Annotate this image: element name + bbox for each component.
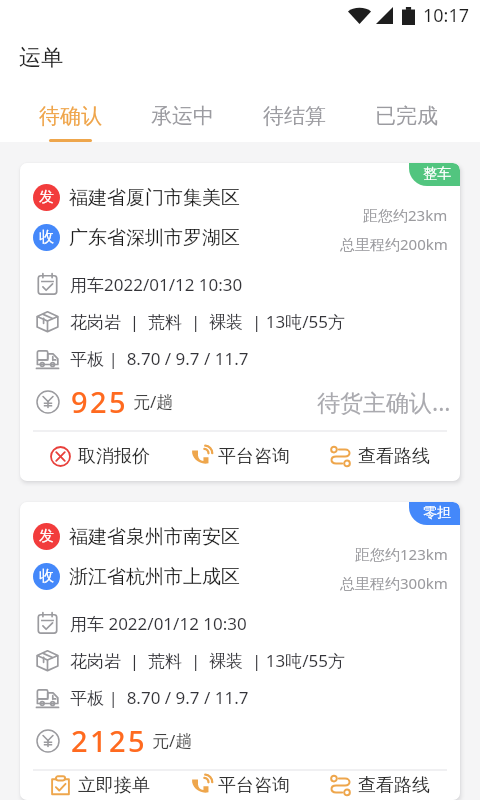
button[interactable]: 发 <box>20 163 460 481</box>
staticText: 零担 <box>423 504 451 522</box>
button[interactable]: 待结算 <box>238 83 350 142</box>
staticText: 10:17 <box>423 3 470 28</box>
button[interactable]: 待确认 <box>14 83 126 142</box>
staticText: 用车 2022/01/12 10:30 <box>70 612 247 635</box>
staticText: 总里程约300km <box>340 573 448 593</box>
staticText: 元/趟 <box>133 390 174 413</box>
staticText: 承运中 <box>151 103 214 129</box>
button[interactable]: 立即接单 <box>30 771 170 800</box>
staticText: 广东省深圳市罗湖区 <box>69 226 240 250</box>
button[interactable]: 查看路线 <box>310 432 450 481</box>
staticText: 已完成 <box>375 103 438 129</box>
staticText: 立即接单 <box>78 774 150 797</box>
staticText: 平板 | 8.70 / 9.7 / 11.7 <box>70 347 249 370</box>
button[interactable]: 平台咨询 <box>170 771 310 800</box>
staticText: 待结算 <box>263 103 326 129</box>
button[interactable]: 平台咨询 <box>170 432 310 481</box>
button[interactable]: 取消报价 <box>30 432 170 481</box>
staticText: 总里程约200km <box>340 234 448 254</box>
staticText: 整车 <box>423 165 451 183</box>
staticText: 收 <box>39 567 54 586</box>
button[interactable]: 承运中 <box>126 83 238 142</box>
staticText: 花岗岩 | 荒料 | 裸装 | 13吨/55方 <box>70 310 345 333</box>
staticText: 平台咨询 <box>218 445 290 468</box>
button[interactable]: 已完成 <box>350 83 462 142</box>
staticText: 福建省泉州市南安区 <box>69 525 240 549</box>
staticText: 运单 <box>19 44 63 72</box>
staticText: 收 <box>39 228 54 247</box>
staticText: 2125 <box>71 721 147 760</box>
staticText: 查看路线 <box>358 774 430 797</box>
button[interactable]: 查看路线 <box>310 771 450 800</box>
staticText: 发 <box>39 527 54 546</box>
staticText: 查看路线 <box>358 445 430 468</box>
staticText: 平台咨询 <box>218 774 290 797</box>
staticText: 福建省厦门市集美区 <box>69 186 240 210</box>
staticText: 取消报价 <box>78 445 150 468</box>
staticText: 用车2022/01/12 10:30 <box>70 273 243 296</box>
staticText: 发 <box>39 188 54 207</box>
staticText: 925 <box>71 382 128 421</box>
staticText: 距您约23km <box>363 205 448 225</box>
staticText: 距您约123km <box>355 544 448 564</box>
button[interactable]: 发 <box>20 502 460 800</box>
staticText: 花岗岩 | 荒料 | 裸装 | 13吨/55方 <box>70 649 345 672</box>
staticText: 平板 | 8.70 / 9.7 / 11.7 <box>70 686 249 709</box>
staticText: 元/趟 <box>152 729 193 752</box>
staticText: 待货主确认... <box>317 386 451 417</box>
staticText: 浙江省杭州市上成区 <box>69 565 240 589</box>
staticText: 待确认 <box>39 103 102 129</box>
